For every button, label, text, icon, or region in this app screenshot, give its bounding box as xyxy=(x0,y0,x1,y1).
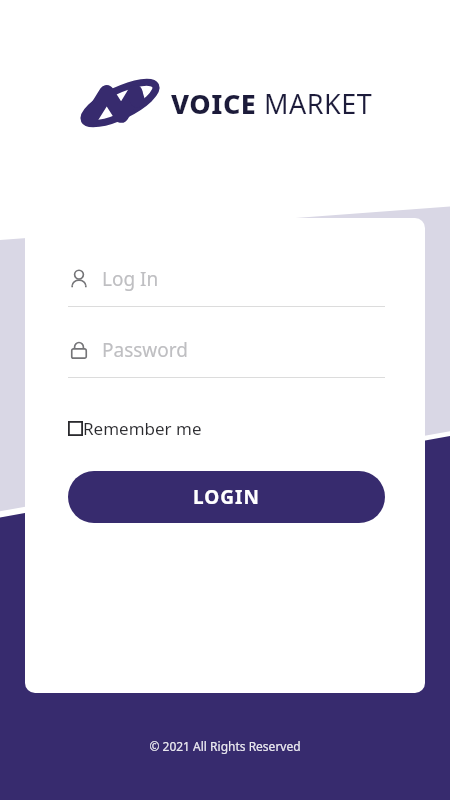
button[interactable]: Remember me xyxy=(68,414,202,443)
button[interactable]: Password xyxy=(68,333,385,378)
staticText: VOICE xyxy=(171,85,257,122)
button[interactable]: LOGIN xyxy=(68,471,385,523)
staticText: LOGIN xyxy=(193,484,260,510)
staticText: © 2021 All Rights Reserved xyxy=(149,738,301,754)
staticText: Remember me xyxy=(83,417,202,440)
button[interactable]: Log In xyxy=(68,262,385,307)
staticText: Log In xyxy=(102,266,159,292)
staticText: MARKET xyxy=(264,85,373,122)
staticText: Password xyxy=(102,337,188,363)
other: Voice Market logo xyxy=(77,72,163,134)
